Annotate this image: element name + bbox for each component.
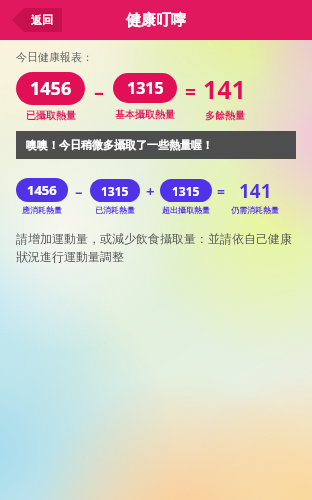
button[interactable]: 1315 xyxy=(160,179,212,202)
staticText: 仍需消耗熱量 xyxy=(231,205,279,215)
staticText: + xyxy=(146,181,155,201)
staticText: 應消耗熱量 xyxy=(22,205,62,215)
staticText: 健康叮嚀 xyxy=(126,11,186,30)
staticText: = xyxy=(217,182,226,201)
button[interactable]: 1456 xyxy=(16,178,68,202)
staticText: 1315 xyxy=(101,183,129,199)
staticText: 1315 xyxy=(172,183,200,199)
staticText: 1315 xyxy=(127,77,164,99)
staticText: 超出攝取熱量 xyxy=(162,205,210,215)
button[interactable]: 返回 xyxy=(12,8,62,32)
staticText: 已攝取熱量 xyxy=(26,109,76,122)
staticText: 1456 xyxy=(30,76,72,101)
staticText: = xyxy=(185,79,196,105)
staticText: 今日健康報表： xyxy=(16,50,93,64)
staticText: 噢噢！今日稍微多攝取了一些熱量喔！ xyxy=(26,138,213,152)
staticText: 多餘熱量 xyxy=(205,109,245,122)
staticText: 返回 xyxy=(31,13,53,27)
staticText: – xyxy=(75,181,83,201)
button[interactable]: 噢噢！今日稍微多攝取了一些熱量喔！ xyxy=(16,131,296,159)
button[interactable]: 1315 xyxy=(113,73,177,103)
staticText: 141 xyxy=(203,72,246,105)
staticText: 141 xyxy=(239,178,272,202)
button[interactable]: 1456 xyxy=(16,72,85,105)
staticText: 1456 xyxy=(27,181,57,199)
staticText: 請增加運動量，或減少飲食攝取量：並請依自己健康狀況進行運動量調整 xyxy=(16,231,296,265)
staticText: 已消耗熱量 xyxy=(95,205,135,215)
staticText: – xyxy=(94,78,104,105)
button[interactable]: 1315 xyxy=(90,179,140,202)
staticText: 基本攝取熱量 xyxy=(115,108,175,121)
